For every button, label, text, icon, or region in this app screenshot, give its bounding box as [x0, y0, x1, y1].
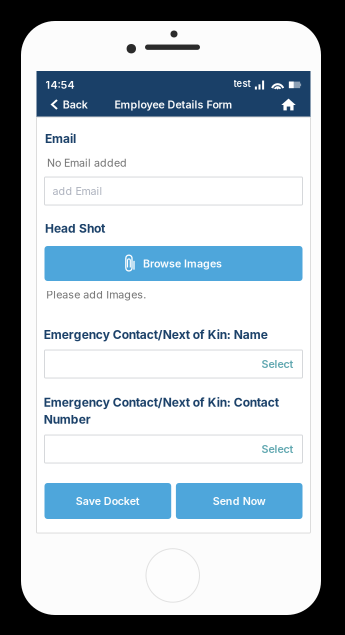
staticText: Number	[44, 412, 91, 427]
staticText: Employee Details Form	[114, 98, 232, 111]
staticText: Head Shot	[45, 221, 105, 236]
staticText: Save Docket	[76, 494, 140, 507]
staticText: test	[233, 78, 250, 89]
button[interactable]: Send Now	[36, 117, 163, 153]
button[interactable]: Select	[36, 117, 294, 145]
staticText: No Email added	[47, 156, 127, 169]
button[interactable]: Home	[36, 92, 68, 117]
staticText: 14:54	[45, 78, 74, 91]
staticText: Email	[45, 131, 76, 146]
staticText: Select	[261, 442, 293, 455]
button[interactable]: add Email	[36, 117, 294, 145]
button[interactable]: Back	[36, 92, 88, 117]
button[interactable]: Save Docket	[36, 117, 163, 153]
staticText: Select	[261, 357, 293, 370]
button[interactable]: Select	[36, 117, 294, 145]
staticText: add Email	[52, 184, 102, 197]
staticText: Back	[63, 98, 88, 111]
staticText: Emergency Contact/Next of Kin: Name	[44, 327, 268, 342]
staticText: Browse Images	[143, 257, 222, 270]
staticText: Send Now	[213, 494, 266, 507]
button[interactable]: Browse Images	[36, 117, 294, 152]
staticText: Emergency Contact/Next of Kin: Contact	[44, 395, 279, 409]
staticText: Please add Images.	[46, 288, 146, 301]
